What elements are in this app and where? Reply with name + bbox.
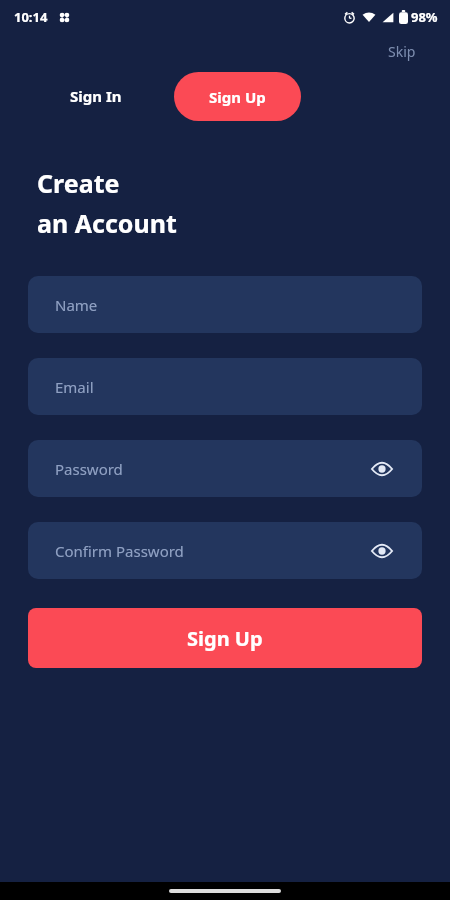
staticText: 10:14 [14,8,48,26]
staticText: an Account [37,206,177,240]
button[interactable]: Skip [384,39,420,64]
staticText: Sign Up [187,625,263,652]
staticText: Email [55,377,94,397]
staticText: Create [37,166,120,200]
staticText: Name [55,295,98,315]
staticText: 98% [411,8,438,26]
staticText: Password [55,459,123,479]
button[interactable]: Sign Up [28,608,422,668]
button[interactable]: Show password [369,456,395,482]
button[interactable]: Name [28,276,422,333]
staticText: Sign Up [209,87,266,107]
staticText: Sign In [70,86,122,106]
button[interactable]: Password [28,440,422,497]
button[interactable]: Show password [369,538,395,564]
staticText: Skip [388,42,416,61]
button[interactable]: Sign Up [174,72,301,121]
button[interactable]: Email [28,358,422,415]
staticText: Confirm Password [55,541,184,561]
button[interactable]: Confirm Password [28,522,422,579]
button[interactable]: Sign In [56,76,136,116]
